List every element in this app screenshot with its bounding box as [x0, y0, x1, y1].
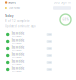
staticText: description line: [12, 71, 22, 72]
staticText: Docs: [53, 1, 59, 4]
staticText: Item title: [12, 60, 25, 63]
button[interactable]: Item title: [0, 38, 76, 45]
button[interactable]: Item title: [0, 66, 76, 73]
staticText: 12m: [48, 69, 51, 70]
staticText: Item title: [12, 46, 25, 49]
staticText: Item title: [12, 32, 25, 35]
staticText: Overview: [9, 6, 20, 10]
staticText: description line: [12, 43, 22, 44]
staticText: description line: [12, 36, 22, 37]
staticText: description line: [12, 50, 22, 51]
staticText: 12m: [48, 55, 51, 56]
staticText: Item title: [12, 53, 25, 56]
staticText: Today: [5, 14, 13, 18]
staticText: 12m: [48, 34, 51, 35]
button[interactable]: Item title: [0, 52, 76, 59]
staticText: 68%: [62, 18, 68, 21]
staticText: Item title: [12, 39, 25, 42]
staticText: Acme: [8, 1, 16, 4]
staticText: description line: [12, 57, 22, 58]
staticText: 12m: [48, 48, 51, 49]
button[interactable]: Home: [5, 1, 16, 4]
staticText: Item title: [12, 67, 25, 70]
staticText: Updated a minute ago: [5, 24, 36, 28]
button[interactable]: Item title: [0, 59, 76, 66]
button[interactable]: Docs: [53, 1, 59, 4]
button[interactable]: Item title: [0, 45, 76, 52]
staticText: 12m: [48, 41, 51, 42]
button[interactable]: Sign in: [61, 1, 71, 4]
staticText: 12m: [48, 62, 51, 63]
button[interactable]: Item title: [0, 31, 76, 38]
staticText: description line: [12, 64, 22, 65]
staticText: 8 of 12 complete: [5, 19, 30, 23]
staticText: Sign in: [61, 1, 71, 4]
